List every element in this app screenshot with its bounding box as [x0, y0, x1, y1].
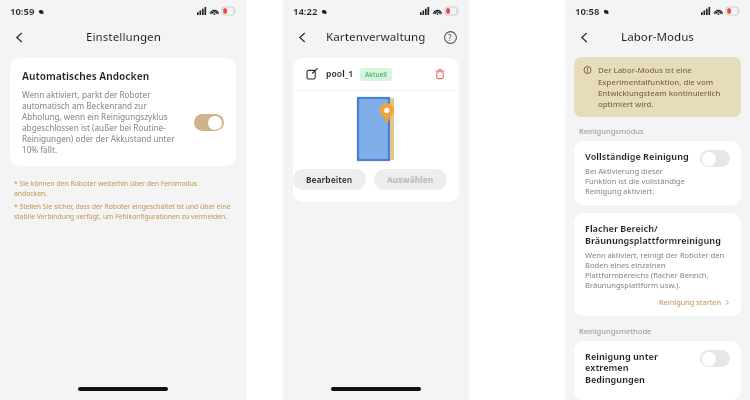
staticText: Bearbeiten — [306, 174, 353, 185]
button[interactable]: Rename — [303, 65, 321, 83]
button[interactable]: Toggle — [700, 350, 730, 367]
button[interactable]: Toggle — [194, 114, 224, 131]
button[interactable]: Back — [573, 26, 595, 48]
staticText: pool_1 — [326, 68, 354, 80]
staticText: Bräunungsplattformreinigung — [585, 234, 721, 246]
staticText: Bedingungen — [585, 373, 645, 385]
button[interactable]: Back — [291, 26, 313, 48]
staticText: Wenn aktiviert, reinigt der Roboter den … — [585, 250, 730, 290]
staticText: 10:59 — [10, 5, 35, 18]
button[interactable]: Back — [8, 26, 30, 48]
button[interactable]: Delete — [431, 65, 449, 83]
staticText: 14:22 — [293, 5, 318, 18]
staticText: * Stellen Sie sicher, dass der Roboter e… — [14, 202, 232, 221]
staticText: Der Labor-Modus ist eine Experimentalfun… — [598, 65, 732, 109]
button[interactable]: Toggle — [700, 150, 730, 167]
button[interactable]: Vollständige Reinigung — [574, 141, 741, 205]
staticText: Flacher Bereich/ — [585, 222, 658, 234]
button[interactable]: Reinigung starten — [585, 297, 730, 307]
staticText: Auswählen — [387, 174, 434, 185]
staticText: Wenn aktiviert, parkt der Roboter automa… — [22, 89, 188, 155]
staticText: Reinigungsmodus — [579, 126, 644, 136]
staticText: Aktuell — [365, 70, 387, 79]
staticText: * Sie können den Roboter weiterhin über … — [14, 179, 232, 198]
button[interactable]: Reinigung unter extremen — [574, 341, 741, 400]
staticText: Reinigung starten — [659, 297, 722, 307]
staticText: Einstellungen — [86, 29, 161, 45]
staticText: Vollständige Reinigung — [585, 150, 689, 162]
button[interactable]: Help — [440, 27, 460, 47]
staticText: 10:58 — [575, 5, 600, 18]
button[interactable]: Flacher Bereich/ — [574, 213, 741, 316]
staticText: Kartenverwaltung — [326, 29, 426, 45]
staticText: Bei Aktivierung dieser Funktion ist die … — [585, 166, 693, 196]
button[interactable]: Auswählen — [374, 169, 447, 190]
staticText: Reinigungsmethode — [579, 326, 652, 336]
staticText: ? — [448, 32, 452, 43]
button[interactable]: Bearbeiten — [293, 169, 366, 190]
staticText: Reinigung unter extremen — [585, 350, 693, 373]
staticText: Labor-Modus — [621, 29, 694, 45]
staticText: Automatisches Andocken — [22, 69, 150, 83]
button[interactable]: Automatisches Andocken — [10, 58, 236, 166]
